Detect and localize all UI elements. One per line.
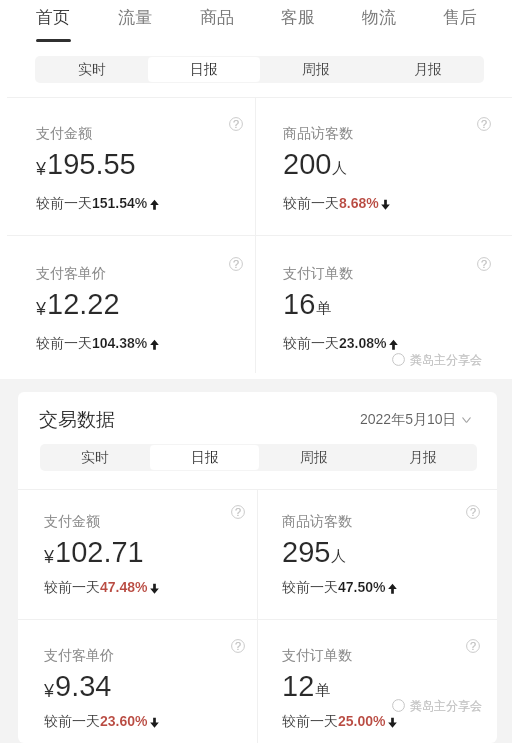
staticText: 9.34 [55,670,112,702]
staticText: ¥ [44,547,55,567]
button[interactable]: 商品 [176,0,257,46]
button[interactable]: 日报 [148,57,260,82]
button[interactable]: 支付金额 [0,98,255,235]
staticText: ? [481,258,488,270]
button[interactable]: 物流 [338,0,419,46]
staticText: 102.71 [55,536,144,568]
staticText: 粪岛主分享会 [410,352,482,367]
staticText: ? [233,258,240,270]
staticText: 较前一天47.48% [44,579,148,597]
button[interactable]: 商品访客数 [258,490,497,619]
staticText: 支付金额 [36,125,92,143]
staticText: 实时 [81,449,109,467]
button[interactable]: 指标说明 [477,257,491,271]
button[interactable]: 指标说明 [229,117,243,131]
button[interactable]: 支付金额 [18,490,257,619]
staticText: ? [470,506,477,518]
staticText: 日报 [190,61,218,79]
staticText: ? [233,118,240,130]
staticText: 支付客单价 [36,265,106,283]
staticText: 月报 [414,61,442,79]
button[interactable]: 2022年5月10日 [360,411,471,429]
staticText: 195.55 [47,148,136,180]
staticText: 物流 [362,7,396,28]
staticText: ? [235,640,242,652]
button[interactable]: 流量 [94,0,176,46]
staticText: 12 [282,670,315,702]
staticText: 日报 [191,449,219,467]
button[interactable]: 售后 [419,0,500,46]
staticText: 首页 [36,7,70,28]
button[interactable]: 实时 [35,57,148,82]
staticText: ? [235,506,242,518]
button[interactable]: 周报 [260,57,372,82]
button[interactable]: 日报 [150,445,259,470]
button[interactable]: 实时 [40,445,150,470]
staticText: ¥ [36,159,47,179]
button[interactable]: 首页 [12,0,94,46]
staticText: 流量 [118,7,152,28]
staticText: 客服 [281,7,315,28]
staticText: ¥ [36,299,47,319]
staticText: 单 [315,681,330,700]
staticText: 12.22 [47,288,120,320]
button[interactable]: 支付客单价 [0,236,255,373]
button[interactable]: 指标说明 [231,505,245,519]
button[interactable]: 指标说明 [229,257,243,271]
staticText: 商品访客数 [282,513,352,531]
button[interactable]: 支付客单价 [18,620,257,743]
staticText: ? [470,640,477,652]
button[interactable]: 月报 [368,445,477,470]
button[interactable]: 月报 [372,57,484,82]
staticText: 商品访客数 [283,125,353,143]
button[interactable]: 周报 [259,445,368,470]
staticText: 较前一天104.38% [36,335,148,353]
button[interactable]: 客服 [257,0,338,46]
staticText: 2022年5月10日 [360,411,457,429]
staticText: 较前一天25.00% [282,713,386,731]
button[interactable]: 指标说明 [466,639,480,653]
button[interactable]: 指标说明 [466,505,480,519]
staticText: ¥ [44,681,55,701]
button[interactable]: 支付订单数 [256,236,512,373]
staticText: ? [481,118,488,130]
staticText: 人 [331,547,346,566]
staticText: 人 [332,159,347,178]
button[interactable]: 指标说明 [477,117,491,131]
staticText: 较前一天151.54% [36,195,148,213]
staticText: 售后 [443,7,477,28]
staticText: 交易数据 [39,408,115,432]
staticText: 支付订单数 [282,647,352,665]
staticText: 月报 [409,449,437,467]
staticText: 较前一天23.08% [283,335,387,353]
staticText: 较前一天23.60% [44,713,148,731]
button[interactable]: 指标说明 [231,639,245,653]
staticText: 较前一天47.50% [282,579,386,597]
staticText: 实时 [78,61,106,79]
staticText: 支付金额 [44,513,100,531]
staticText: 周报 [302,61,330,79]
staticText: 200 [283,148,332,180]
staticText: 16 [283,288,316,320]
staticText: 周报 [300,449,328,467]
staticText: 支付客单价 [44,647,114,665]
button[interactable]: 商品访客数 [256,98,512,235]
staticText: 支付订单数 [283,265,353,283]
staticText: 商品 [200,7,234,28]
staticText: 粪岛主分享会 [410,698,482,713]
button[interactable]: 支付订单数 [258,620,497,743]
staticText: 单 [316,299,331,318]
staticText: 295 [282,536,331,568]
staticText: 较前一天8.68% [283,195,379,213]
